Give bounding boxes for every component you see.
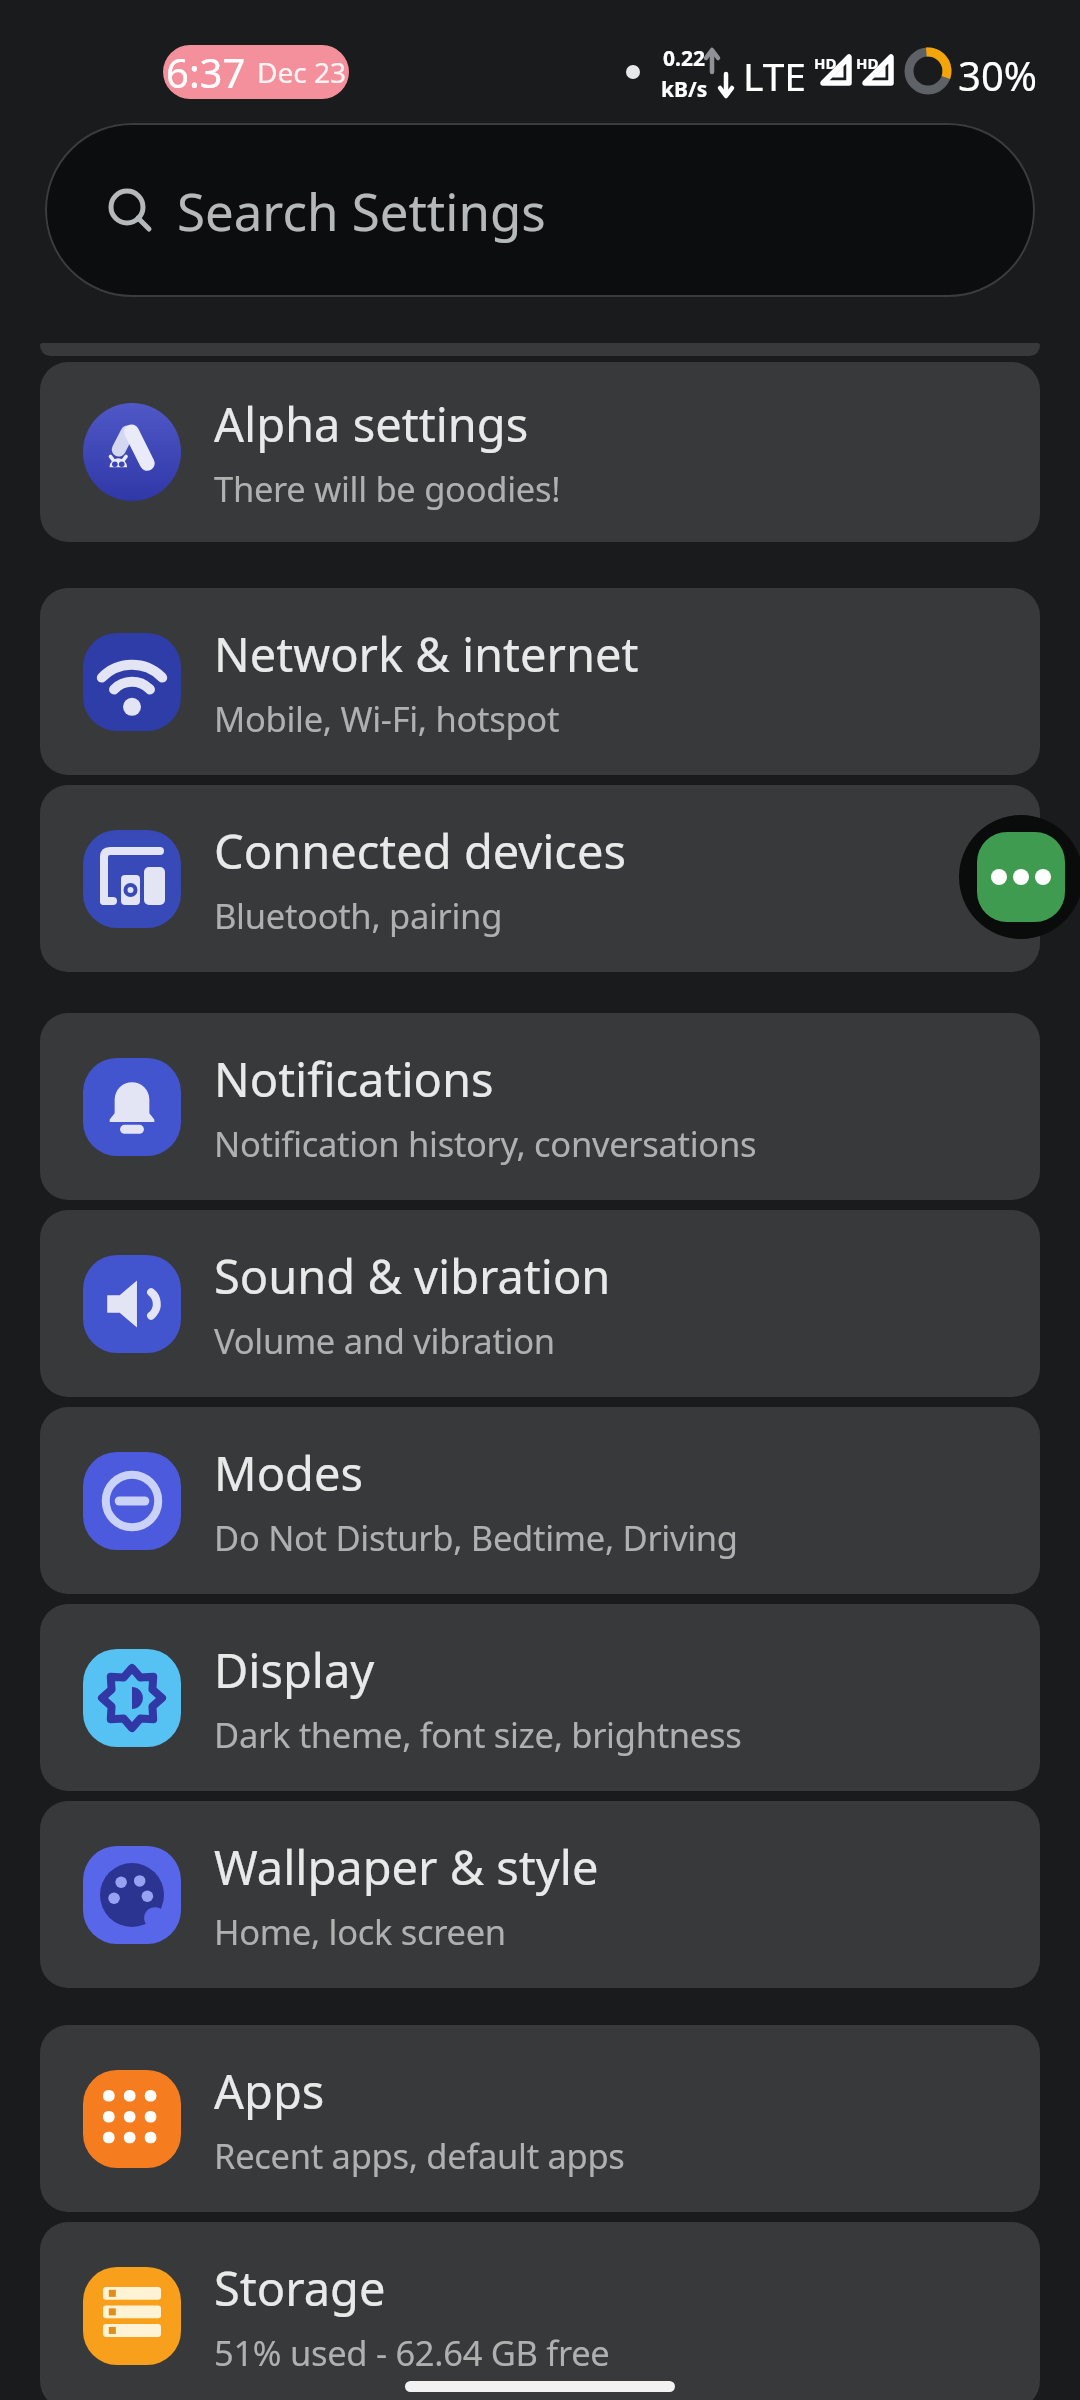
staticText: 30%	[958, 48, 1037, 102]
button[interactable]: Notifications	[40, 1013, 1040, 1200]
button[interactable]: Alpha settings	[40, 362, 1040, 542]
staticText: Connected devices	[214, 819, 626, 883]
button[interactable]: Connected devices	[40, 785, 1040, 972]
staticText: Dec 23	[257, 53, 346, 91]
staticText: Bluetooth, pairing	[214, 892, 503, 939]
staticText: kB/s	[661, 75, 708, 104]
staticText: Storage	[214, 2256, 386, 2320]
button[interactable]: Apps	[40, 2025, 1040, 2212]
staticText: Display	[214, 1638, 375, 1702]
button[interactable]: 6:37	[163, 45, 349, 99]
button[interactable]: Search Settings	[45, 123, 1035, 297]
staticText: Notifications	[214, 1047, 494, 1111]
staticText: There will be goodies!	[214, 465, 561, 512]
staticText: Modes	[214, 1441, 363, 1505]
button[interactable]	[977, 832, 1065, 922]
button[interactable]: Wallpaper & style	[40, 1801, 1040, 1988]
staticText: Dark theme, font size, brightness	[214, 1711, 742, 1758]
staticText: Home, lock screen	[214, 1908, 506, 1955]
button[interactable]: Modes	[40, 1407, 1040, 1594]
staticText: Notification history, conversations	[214, 1120, 757, 1167]
staticText: Recent apps, default apps	[214, 2132, 625, 2179]
staticText: HD	[814, 53, 837, 73]
button[interactable]: Storage	[40, 2222, 1040, 2400]
staticText: 0.22	[663, 44, 705, 73]
button[interactable]: Sound & vibration	[40, 1210, 1040, 1397]
staticText: LTE	[743, 49, 807, 102]
staticText: Sound & vibration	[214, 1244, 611, 1308]
staticText: Alpha settings	[214, 392, 529, 456]
staticText: Network & internet	[214, 622, 639, 686]
staticText: 6:37	[166, 45, 246, 99]
staticText: HD	[856, 53, 879, 73]
staticText: Mobile, Wi-Fi, hotspot	[214, 695, 560, 742]
staticText: Do Not Disturb, Bedtime, Driving	[214, 1514, 738, 1561]
button[interactable]: Display	[40, 1604, 1040, 1791]
staticText: Apps	[214, 2059, 325, 2123]
staticText: Wallpaper & style	[214, 1835, 599, 1899]
button[interactable]: Network & internet	[40, 588, 1040, 775]
staticText: Volume and vibration	[214, 1317, 555, 1364]
staticText: 51% used - 62.64 GB free	[214, 2329, 610, 2376]
staticText: Search Settings	[177, 176, 546, 245]
